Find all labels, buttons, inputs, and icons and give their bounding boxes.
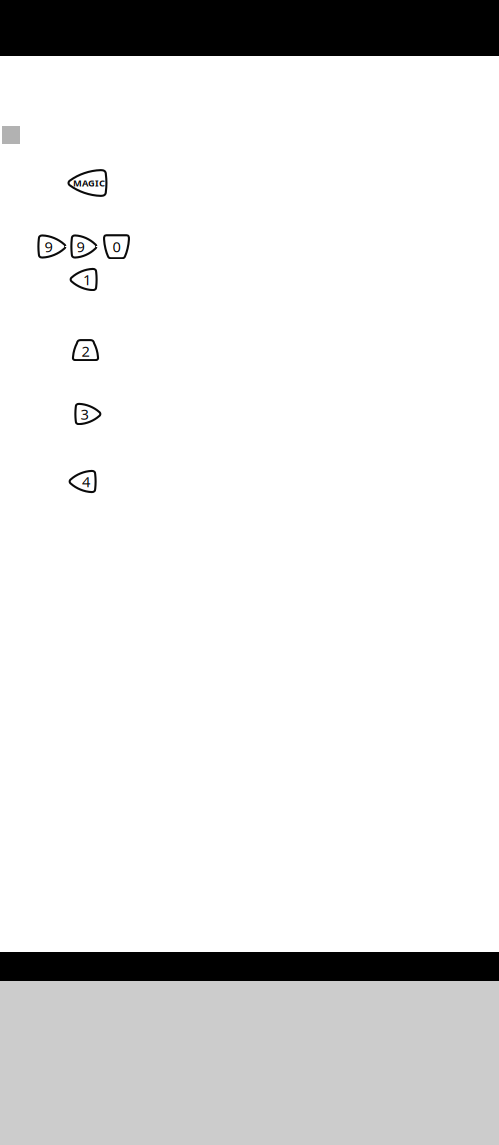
- button[interactable]: 2: [72, 339, 99, 361]
- staticText: MAGIC: [73, 177, 105, 189]
- button[interactable]: 1: [71, 268, 97, 291]
- staticText: 0: [112, 237, 120, 256]
- button[interactable]: MAGIC: [69, 169, 107, 197]
- staticText: 9: [76, 237, 84, 256]
- staticText: 1: [83, 270, 91, 289]
- button[interactable]: 4: [70, 470, 96, 493]
- staticText: 4: [82, 472, 90, 491]
- button[interactable]: 3: [75, 403, 100, 425]
- staticText: 9: [44, 237, 52, 256]
- staticText: 2: [81, 341, 89, 361]
- staticText: 3: [80, 404, 88, 424]
